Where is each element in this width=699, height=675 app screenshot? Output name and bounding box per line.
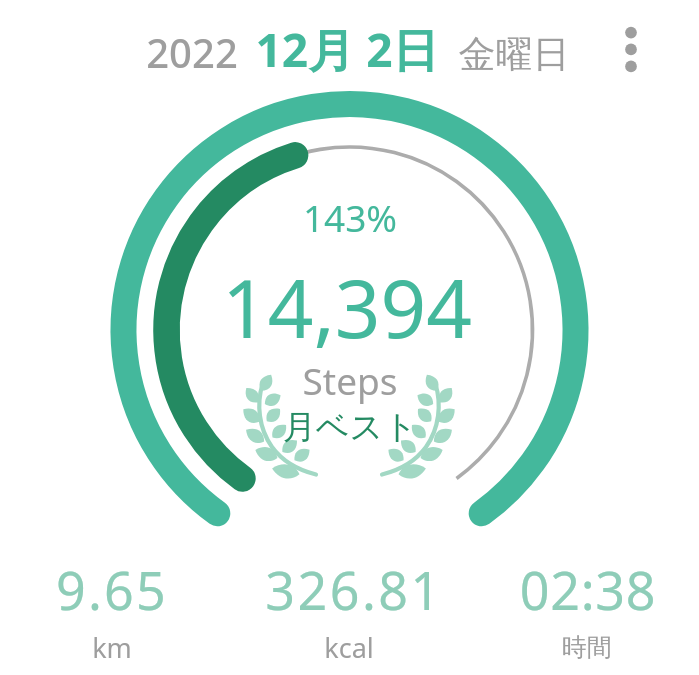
button[interactable]: 02:38 — [473, 550, 699, 670]
staticText: 金曜日 — [424, 31, 604, 78]
staticText: 143% — [200, 192, 500, 242]
button[interactable]: 9.65 — [0, 550, 227, 670]
staticText: 月ベスト — [200, 406, 500, 448]
button[interactable]: 143% — [190, 185, 510, 455]
staticText: 14,394 — [197, 252, 497, 361]
staticText: 時間 — [472, 632, 699, 663]
staticText: 9.65 — [0, 554, 227, 625]
staticText: 12月 2日 — [207, 18, 487, 78]
staticText: kcal — [234, 629, 464, 666]
staticText: km — [0, 629, 227, 666]
staticText: 2022 — [112, 25, 272, 79]
staticText: Steps — [200, 355, 500, 405]
button[interactable]: 326.81 — [239, 550, 469, 670]
staticText: 326.81 — [239, 554, 469, 625]
staticText: 02:38 — [473, 554, 699, 625]
button[interactable]: More options — [607, 14, 655, 86]
button[interactable]: 2022 — [140, 16, 580, 76]
